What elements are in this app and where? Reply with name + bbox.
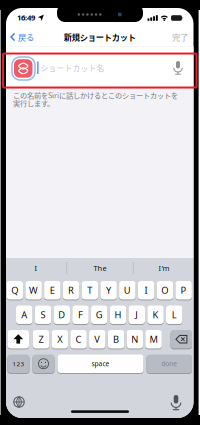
button[interactable]: F bbox=[72, 305, 89, 325]
button[interactable]: R bbox=[63, 281, 79, 300]
button[interactable]: H bbox=[110, 305, 126, 325]
button[interactable]: space bbox=[57, 354, 143, 374]
staticText: T bbox=[87, 284, 92, 297]
button[interactable]: W bbox=[25, 281, 42, 300]
button[interactable]: done bbox=[146, 354, 192, 374]
button[interactable] bbox=[170, 330, 192, 349]
staticText: R bbox=[68, 284, 74, 297]
button[interactable]: Q bbox=[7, 281, 23, 300]
button[interactable] bbox=[6, 46, 193, 87]
staticText: I'm bbox=[158, 263, 169, 273]
staticText: K bbox=[152, 308, 158, 321]
staticText: done bbox=[161, 359, 177, 368]
staticText: A bbox=[21, 308, 27, 321]
staticText: space bbox=[91, 359, 109, 368]
button[interactable] bbox=[13, 396, 25, 408]
staticText: I bbox=[145, 284, 148, 297]
staticText: V bbox=[94, 333, 100, 346]
button[interactable]: N bbox=[126, 330, 143, 349]
staticText: H bbox=[114, 308, 121, 321]
button[interactable]: S bbox=[35, 305, 51, 325]
button[interactable]: K bbox=[147, 305, 164, 325]
button[interactable]: X bbox=[51, 330, 68, 349]
button[interactable]: M bbox=[145, 330, 162, 349]
staticText: F bbox=[78, 308, 83, 321]
button[interactable] bbox=[14, 59, 32, 78]
staticText: M bbox=[150, 333, 158, 346]
button[interactable]: I'm bbox=[134, 260, 194, 276]
staticText: D bbox=[58, 308, 65, 321]
staticText: 完了 bbox=[172, 31, 188, 43]
button[interactable]: J bbox=[128, 305, 145, 325]
button[interactable]: I bbox=[6, 260, 66, 276]
button[interactable]: O bbox=[157, 281, 173, 300]
staticText: Q bbox=[11, 284, 18, 297]
button[interactable]: P bbox=[175, 281, 192, 300]
button[interactable]: Z bbox=[33, 330, 49, 349]
button[interactable]: 戻る bbox=[10, 31, 54, 43]
staticText: ショートカット名 bbox=[40, 62, 104, 74]
button[interactable]: I bbox=[138, 281, 154, 300]
staticText: 新規ショートカット bbox=[64, 31, 136, 43]
staticText: L bbox=[172, 308, 177, 321]
button[interactable]: The bbox=[70, 260, 130, 276]
staticText: S bbox=[40, 308, 45, 321]
staticText: G bbox=[96, 308, 103, 321]
button[interactable] bbox=[7, 330, 29, 349]
button[interactable]: A bbox=[16, 305, 32, 325]
button[interactable]: U bbox=[119, 281, 136, 300]
staticText: N bbox=[131, 333, 138, 346]
staticText: Y bbox=[106, 284, 111, 297]
staticText: W bbox=[29, 284, 38, 297]
button[interactable]: L bbox=[166, 305, 182, 325]
button[interactable]: 完了 bbox=[158, 31, 188, 43]
button[interactable]: B bbox=[108, 330, 124, 349]
staticText: P bbox=[181, 284, 187, 297]
staticText: 123 bbox=[12, 360, 24, 368]
button[interactable]: D bbox=[53, 305, 70, 325]
button[interactable] bbox=[32, 354, 54, 374]
staticText: Z bbox=[38, 333, 43, 346]
button[interactable]: V bbox=[89, 330, 105, 349]
staticText: B bbox=[113, 333, 119, 346]
staticText: I bbox=[34, 263, 37, 273]
button[interactable] bbox=[172, 61, 184, 75]
button[interactable]: C bbox=[70, 330, 87, 349]
staticText: U bbox=[124, 284, 131, 297]
staticText: The bbox=[93, 263, 106, 273]
button[interactable] bbox=[170, 395, 182, 410]
button[interactable]: T bbox=[82, 281, 98, 300]
staticText: J bbox=[135, 308, 138, 321]
staticText: 戻る bbox=[18, 31, 34, 43]
staticText: X bbox=[57, 333, 62, 346]
staticText: この名前をSiriに話しかけるとこのショートカットを bbox=[13, 90, 178, 100]
button[interactable]: E bbox=[44, 281, 61, 300]
staticText: 実行します。 bbox=[13, 98, 54, 108]
staticText: 16:49 bbox=[17, 12, 35, 23]
button[interactable]: Y bbox=[100, 281, 117, 300]
staticText: C bbox=[75, 333, 81, 346]
staticText: O bbox=[161, 284, 168, 297]
staticText: E bbox=[50, 284, 55, 297]
button[interactable]: G bbox=[91, 305, 107, 325]
button[interactable]: 123 bbox=[7, 354, 29, 374]
